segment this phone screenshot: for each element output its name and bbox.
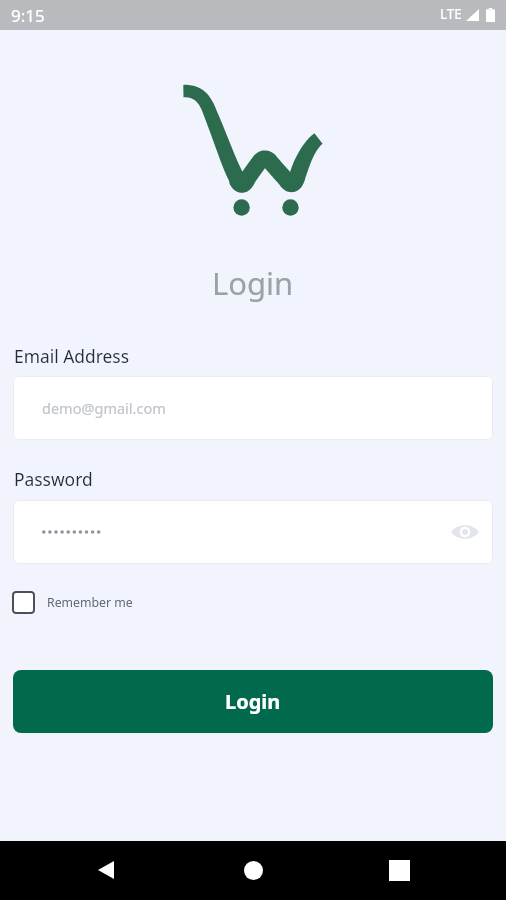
button[interactable]: demo@gmail.com: [13, 376, 493, 440]
button[interactable]: Recent apps: [375, 846, 423, 894]
button[interactable]: Login: [13, 670, 493, 733]
button[interactable]: Remember me: [11, 591, 133, 614]
staticText: LTE: [440, 5, 462, 23]
staticText: Remember me: [47, 594, 133, 611]
button[interactable]: Home: [229, 846, 277, 894]
button[interactable]: Back: [82, 846, 130, 894]
staticText: 9:15: [11, 4, 45, 27]
staticText: Email Address: [14, 344, 129, 368]
staticText: Login: [225, 688, 281, 715]
button[interactable]: Show password: [13, 500, 493, 564]
button[interactable]: Show password: [447, 514, 483, 550]
staticText: Login: [212, 262, 294, 304]
staticText: demo@gmail.com: [42, 398, 166, 418]
staticText: Password: [14, 467, 93, 491]
